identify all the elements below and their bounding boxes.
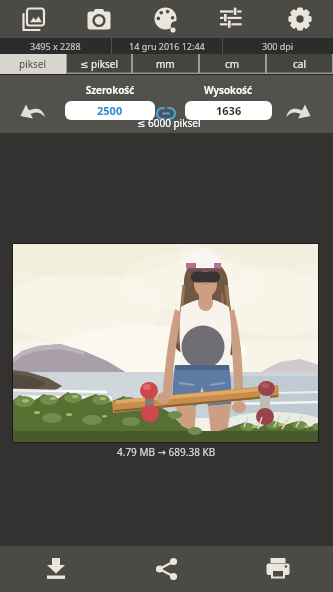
staticText: 300 dpi (262, 40, 294, 52)
staticText: 2500 (97, 103, 123, 118)
staticText: 4.79 MB → 689.38 KB (117, 445, 216, 459)
staticText: 3495 x 2288 (30, 40, 81, 52)
staticText: Szerokość (65, 83, 155, 97)
staticText: ≤ 6000 piksel (137, 116, 201, 130)
button[interactable] (154, 104, 177, 122)
staticText: mm (156, 57, 175, 71)
button[interactable] (199, 0, 266, 38)
staticText: ≤ piksel (80, 57, 119, 71)
staticText: Wysokość (184, 83, 272, 97)
button[interactable]: 2500 (65, 101, 155, 120)
button[interactable]: cal (266, 54, 333, 74)
button[interactable] (111, 546, 222, 592)
staticText: cm (225, 57, 240, 71)
button[interactable] (266, 0, 333, 38)
staticText: 14 gru 2016 12:44 (129, 40, 205, 52)
button[interactable] (66, 0, 132, 38)
button[interactable]: cm (199, 54, 266, 74)
button[interactable] (13, 98, 51, 126)
button[interactable]: piksel (0, 54, 66, 74)
button[interactable] (132, 0, 199, 38)
staticText: cal (293, 57, 306, 71)
button[interactable] (0, 0, 66, 38)
staticText: piksel (19, 57, 47, 71)
button[interactable]: mm (132, 54, 199, 74)
button[interactable]: 1636 (185, 101, 272, 120)
button[interactable]: ≤ piksel (66, 54, 132, 74)
staticText: 1636 (216, 103, 242, 118)
button[interactable] (0, 546, 111, 592)
button[interactable] (222, 546, 333, 592)
button[interactable] (280, 98, 318, 126)
